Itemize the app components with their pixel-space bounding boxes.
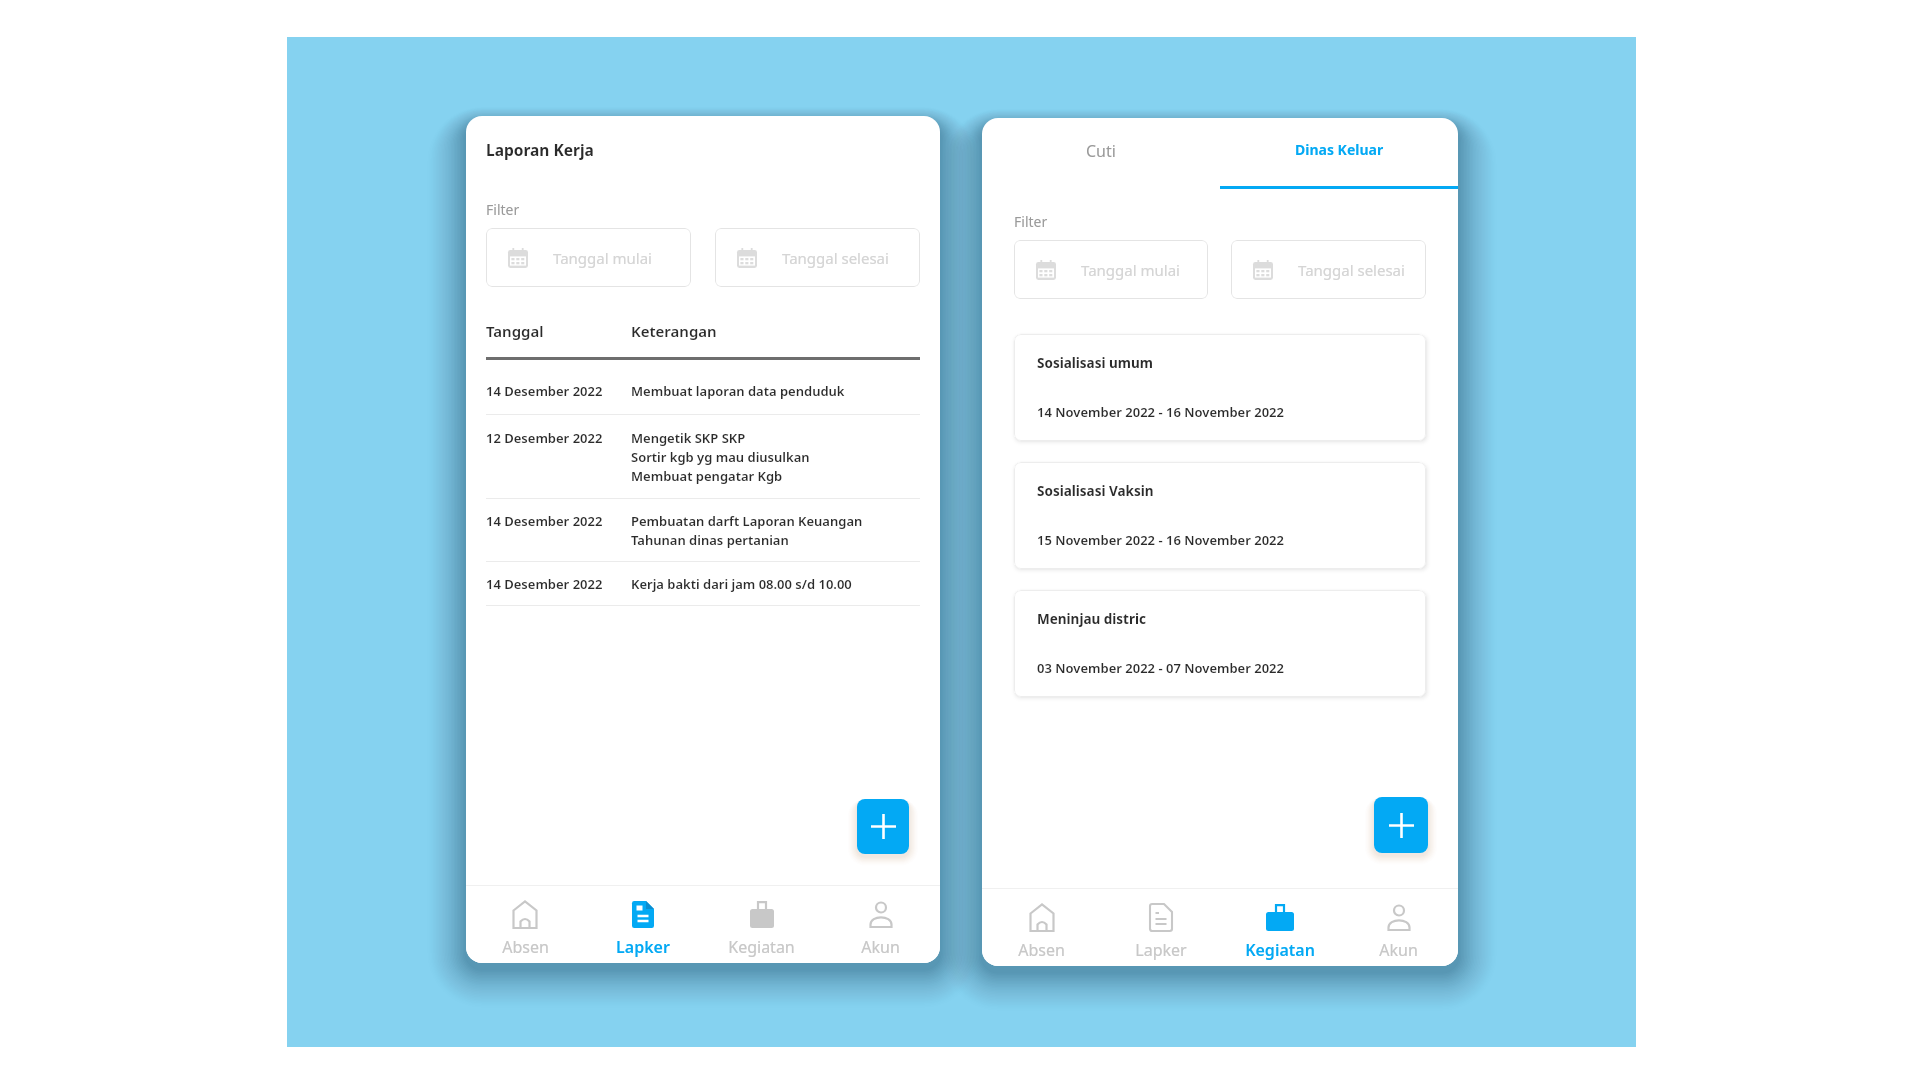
button[interactable]: Absen xyxy=(466,886,584,963)
staticText: 14 Desember 2022 xyxy=(486,575,631,593)
staticText: Akun xyxy=(1379,939,1418,961)
staticText: 03 November 2022 - 07 November 2022 xyxy=(1037,659,1284,677)
staticText: 14 Desember 2022 xyxy=(486,382,631,400)
staticText: 12 Desember 2022 xyxy=(486,429,631,447)
button[interactable]: Sosialisasi umum xyxy=(1014,334,1426,441)
button[interactable]: Kegiatan xyxy=(1220,889,1339,966)
staticText: Meninjau distric xyxy=(1037,610,1147,628)
button[interactable]: Tanggal mulai xyxy=(1014,240,1208,299)
staticText: Keterangan xyxy=(631,321,717,341)
staticText: Laporan Kerja xyxy=(486,139,594,160)
button[interactable]: Tanggal mulai xyxy=(486,228,691,287)
staticText: Absen xyxy=(502,936,549,958)
button[interactable]: Meninjau distric xyxy=(1014,590,1426,697)
button[interactable]: Akun xyxy=(821,886,940,963)
staticText: Kegiatan xyxy=(1245,939,1315,961)
button[interactable]: Tambah laporan xyxy=(857,799,909,854)
button[interactable]: Tambah kegiatan xyxy=(1374,797,1428,853)
button[interactable]: Sosialisasi Vaksin xyxy=(1014,462,1426,569)
button[interactable]: Lapker xyxy=(1101,889,1220,966)
button[interactable]: Lapker xyxy=(584,886,702,963)
staticText: Kegiatan xyxy=(728,936,795,958)
staticText: Membuat laporan data penduduk xyxy=(631,382,845,400)
button[interactable]: Cuti xyxy=(982,118,1220,189)
staticText: Tanggal selesai xyxy=(1298,260,1405,280)
button[interactable]: Tanggal selesai xyxy=(1231,240,1426,299)
staticText: Lapker xyxy=(1135,939,1187,961)
staticText: Kerja bakti dari jam 08.00 s/d 10.00 xyxy=(631,575,852,593)
staticText: 14 Desember 2022 xyxy=(486,512,631,530)
staticText: Filter xyxy=(486,200,520,219)
button[interactable]: Akun xyxy=(1339,889,1458,966)
staticText: Tanggal xyxy=(486,321,631,341)
staticText: Tanggal mulai xyxy=(553,248,652,268)
staticText: 14 November 2022 - 16 November 2022 xyxy=(1037,403,1284,421)
staticText: Sosialisasi umum xyxy=(1037,354,1153,372)
staticText: Sosialisasi Vaksin xyxy=(1037,482,1154,500)
staticText: 15 November 2022 - 16 November 2022 xyxy=(1037,531,1284,549)
button[interactable]: Tanggal selesai xyxy=(715,228,920,287)
button[interactable]: Dinas Keluar xyxy=(1220,118,1458,189)
staticText: Dinas Keluar xyxy=(1295,140,1384,159)
button[interactable]: Absen xyxy=(982,889,1101,966)
staticText: Akun xyxy=(861,936,900,958)
button[interactable]: Kegiatan xyxy=(702,886,821,963)
staticText: Tanggal mulai xyxy=(1081,260,1180,280)
staticText: Absen xyxy=(1018,939,1065,961)
staticText: Cuti xyxy=(1086,140,1116,162)
staticText: Filter xyxy=(1014,212,1048,231)
staticText: Mengetik SKP SKP Sortir kgb yg mau diusu… xyxy=(631,429,810,485)
staticText: Pembuatan darft Laporan Keuangan Tahunan… xyxy=(631,512,863,549)
staticText: Lapker xyxy=(616,936,670,958)
staticText: Tanggal selesai xyxy=(782,248,889,268)
